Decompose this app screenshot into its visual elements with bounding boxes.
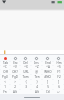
button[interactable]: #NO — [42, 74, 53, 79]
button[interactable]: WHO — [42, 69, 53, 74]
staticText: < — [4, 80, 6, 84]
button[interactable]: Esc — [10, 61, 20, 65]
staticText: @ — [35, 70, 38, 74]
staticText: F2 — [57, 75, 61, 79]
staticText: Tom — [22, 75, 29, 79]
staticText: Alt — [35, 90, 39, 94]
staticText: > — [14, 80, 16, 84]
staticText: Ins — [34, 61, 39, 65]
staticText: Off — [3, 70, 8, 74]
staticText: WHO — [44, 70, 52, 74]
staticText: OK? — [12, 70, 18, 74]
button[interactable]: Fn — [0, 89, 10, 94]
button[interactable]: Clipboard — [53, 55, 64, 61]
staticText: PgU — [2, 75, 8, 79]
staticText: ^A — [46, 65, 50, 69]
staticText: 6 — [58, 85, 60, 89]
button[interactable]: F2 — [53, 74, 64, 79]
staticText: } — [36, 80, 38, 84]
button[interactable]: 2 — [10, 84, 20, 89]
staticText: URL — [23, 70, 29, 74]
button[interactable]: Ctl — [42, 89, 53, 94]
staticText: ^V — [13, 65, 17, 69]
staticText: ^X — [24, 65, 28, 69]
button[interactable]: PgU — [0, 74, 10, 79]
staticText: Ten — [34, 75, 40, 79]
staticText: Tab — [3, 61, 8, 65]
staticText: Fn — [3, 90, 7, 94]
staticText: 4 — [36, 85, 38, 89]
staticText: ] — [58, 80, 59, 84]
button[interactable]: { — [20, 79, 31, 84]
button[interactable]: F1 — [53, 69, 64, 74]
staticText: ^Z — [35, 65, 39, 69]
staticText: ^S — [57, 65, 61, 69]
staticText: ↵ — [57, 90, 60, 93]
button[interactable]: @ — [31, 69, 42, 74]
button[interactable]: Settings — [10, 55, 20, 61]
button[interactable]: End — [42, 61, 53, 65]
button[interactable]: Emoji — [20, 55, 31, 61]
button[interactable]: [ — [42, 79, 53, 84]
button[interactable]: URL — [20, 69, 31, 74]
staticText: Esc — [13, 61, 18, 65]
staticText: 2 — [14, 85, 16, 89]
staticText: 1 — [4, 85, 6, 89]
staticText: PgD — [12, 75, 18, 79]
button[interactable]: ^X — [20, 65, 31, 69]
button[interactable]: > — [10, 79, 20, 84]
staticText: End — [45, 61, 51, 65]
button[interactable]: ^V — [10, 65, 20, 69]
button[interactable]: ↵ — [53, 89, 64, 94]
button[interactable]: Del — [20, 61, 31, 65]
button[interactable]: GIF — [42, 55, 53, 61]
staticText: Ctl — [46, 90, 50, 94]
staticText: Alt — [13, 90, 17, 94]
button[interactable]: 1 — [0, 84, 10, 89]
button[interactable]: } — [31, 79, 42, 84]
button[interactable]: Off — [0, 69, 10, 74]
button[interactable]: 6 — [53, 84, 64, 89]
button[interactable]: ^S — [53, 65, 64, 69]
staticText: #NO — [44, 75, 51, 79]
button[interactable]: Ten — [31, 74, 42, 79]
button[interactable]: OK? — [10, 69, 20, 74]
button[interactable]: ^Z — [31, 65, 42, 69]
button[interactable]: ] — [53, 79, 64, 84]
button[interactable]: Tom — [20, 74, 31, 79]
button[interactable]: ^A — [42, 65, 53, 69]
button[interactable]: Alt — [10, 89, 20, 94]
button[interactable]: Tab — [0, 61, 10, 65]
button[interactable]: Google — [0, 55, 10, 61]
button[interactable]: < — [0, 79, 10, 84]
staticText: { — [25, 80, 27, 84]
staticText: Hm — [56, 61, 62, 65]
staticText: ^C — [3, 65, 7, 69]
staticText: 3 — [25, 85, 27, 89]
button[interactable]: 3 — [20, 84, 31, 89]
button[interactable]: Ins — [31, 61, 42, 65]
button[interactable]: Hm — [53, 61, 64, 65]
staticText: [ — [47, 80, 48, 84]
button[interactable]: PgD — [10, 74, 20, 79]
button[interactable]: Sticker — [31, 55, 42, 61]
button[interactable]: Alt — [31, 89, 42, 94]
button[interactable]: ^C — [0, 65, 10, 69]
button[interactable]: 4 — [31, 84, 42, 89]
button[interactable] — [0, 50, 64, 55]
staticText: 5 — [47, 85, 49, 89]
staticText: Del — [23, 61, 28, 65]
staticText: F1 — [57, 70, 61, 74]
button[interactable]: 5 — [42, 84, 53, 89]
